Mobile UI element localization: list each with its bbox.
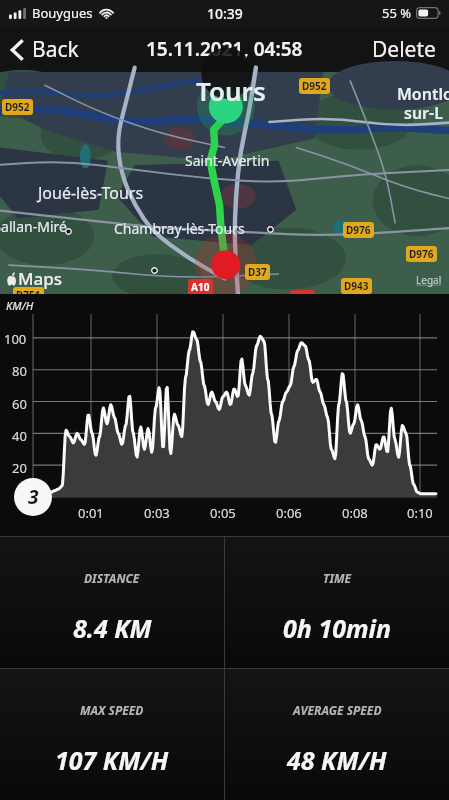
staticText: 0:06 <box>276 504 302 522</box>
button[interactable]: TIME <box>225 537 449 668</box>
staticText: 3 <box>28 484 39 510</box>
staticText: AVERAGE SPEED <box>293 702 382 718</box>
staticText: A85 <box>293 291 312 305</box>
staticText: D976 <box>346 223 371 237</box>
staticText: 0:01 <box>78 504 104 522</box>
staticText: sur-L <box>404 102 443 124</box>
staticText: Chambray-lès-Tours <box>114 219 245 238</box>
staticText: Montlo <box>397 83 449 105</box>
staticText: Tours <box>196 73 266 108</box>
staticText: 107 KM/H <box>55 743 169 777</box>
staticText: 55 % <box>382 4 412 22</box>
staticText: Delete <box>372 35 436 64</box>
staticText: A10 <box>191 280 210 294</box>
button[interactable]: Back <box>0 27 89 72</box>
staticText: Joué-lès-Tours <box>38 182 144 204</box>
button[interactable]: Legal <box>416 273 449 294</box>
staticText: Bouygues <box>32 4 93 22</box>
staticText: 20 <box>12 459 27 477</box>
button[interactable]: DISTANCE <box>0 537 224 668</box>
staticText: Maps <box>18 267 63 290</box>
staticText: 100 <box>4 330 27 348</box>
staticText: D37 <box>248 265 267 279</box>
staticText: D943 <box>344 279 369 293</box>
staticText: 40 <box>12 427 27 445</box>
staticText: Saint-Avertin <box>185 151 270 170</box>
button[interactable]: MAX SPEED <box>0 669 224 800</box>
staticText: 8.4 KM <box>73 611 152 645</box>
staticText: Legal <box>416 273 442 287</box>
staticText: MAX SPEED <box>80 702 144 718</box>
staticText: 15.11.2021, 04:58 <box>146 36 303 62</box>
staticText: 48 KM/H <box>287 743 387 777</box>
staticText: KM/H <box>6 298 34 313</box>
button[interactable]: Delete <box>359 27 449 72</box>
button[interactable]: 3 <box>14 478 52 516</box>
staticText: 0:10 <box>407 504 433 522</box>
staticText: DISTANCE <box>84 570 140 586</box>
staticText: Ballan-Miré <box>0 217 67 236</box>
staticText: Back <box>32 35 79 64</box>
staticText: 10:39 <box>207 4 243 23</box>
staticText: D952 <box>302 79 327 93</box>
staticText: D976 <box>409 247 434 261</box>
staticText: D952 <box>5 100 30 114</box>
staticText: 0:08 <box>342 504 368 522</box>
other: Back <box>11 39 24 61</box>
staticText: D751 <box>16 288 41 302</box>
button[interactable]: Tours <box>0 72 449 294</box>
staticText: 60 <box>12 395 27 413</box>
staticText: 0:05 <box>210 504 236 522</box>
staticText: 0h 10min <box>283 611 392 645</box>
staticText: TIME <box>323 570 352 586</box>
staticText: 0:03 <box>144 504 170 522</box>
staticText: 80 <box>12 362 27 380</box>
button[interactable]: AVERAGE SPEED <box>225 669 449 800</box>
